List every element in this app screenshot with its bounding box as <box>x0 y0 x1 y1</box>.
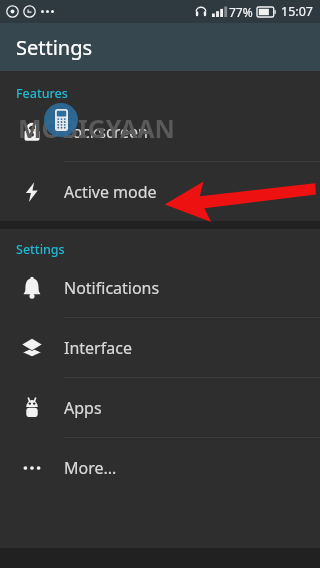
staticText: Settings <box>16 34 93 61</box>
button[interactable]: Notifications <box>0 258 320 317</box>
staticText: More... <box>64 457 117 479</box>
staticText: MOBIGYAAN <box>18 111 175 145</box>
staticText: 77% <box>229 4 253 20</box>
staticText: Features <box>16 85 68 102</box>
other: Active mode <box>21 181 43 203</box>
other: Notifications <box>21 277 43 299</box>
staticText: Lockscreen <box>64 121 148 143</box>
staticText: Settings <box>16 241 65 258</box>
staticText: Notifications <box>64 277 160 299</box>
other: More <box>21 457 43 479</box>
button[interactable]: Apps <box>0 378 320 437</box>
button[interactable]: Lockscreen <box>0 102 320 161</box>
other: Lockscreen <box>21 121 43 143</box>
other: Apps <box>21 397 43 419</box>
staticText: Interface <box>64 337 132 359</box>
other: Interface <box>21 337 43 359</box>
button[interactable]: Settings <box>0 23 320 71</box>
button[interactable]: More <box>0 438 320 497</box>
staticText: Apps <box>64 397 102 419</box>
staticText: Active mode <box>64 181 157 203</box>
button[interactable]: Active mode <box>0 162 320 221</box>
staticText: 15:07 <box>281 3 313 20</box>
button[interactable]: Interface <box>0 318 320 377</box>
